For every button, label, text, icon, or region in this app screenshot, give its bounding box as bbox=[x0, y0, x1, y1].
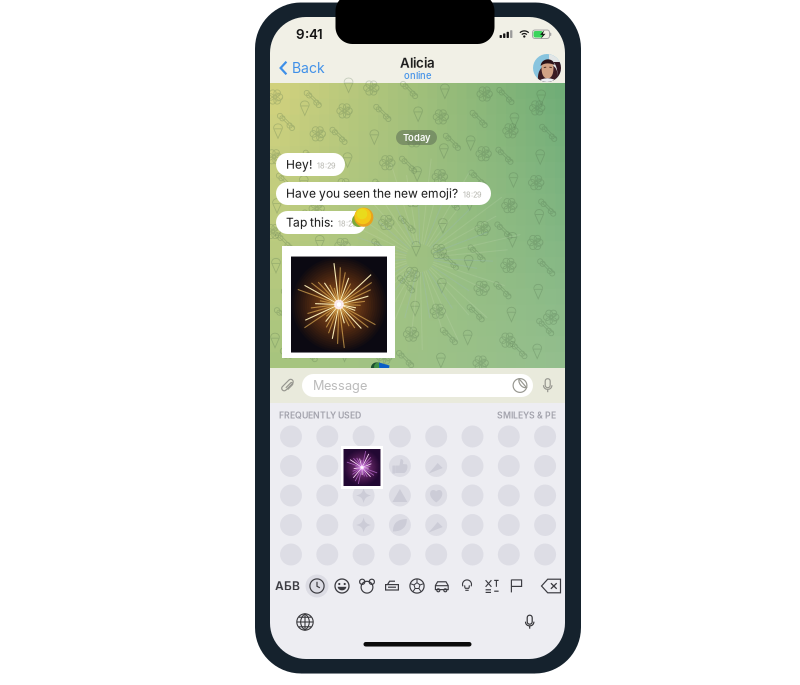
staticText: 18:29 bbox=[463, 190, 482, 199]
button[interactable]: Flags bbox=[504, 573, 529, 599]
button[interactable]: Animals and nature bbox=[354, 573, 379, 599]
staticText: Message bbox=[313, 378, 367, 393]
button[interactable]: Back bbox=[270, 53, 331, 83]
staticText: FREQUENTLY USED bbox=[279, 410, 361, 420]
button[interactable]: АБВ bbox=[270, 573, 304, 599]
button[interactable]: Delete bbox=[537, 573, 564, 599]
staticText: SMILEYS & PE bbox=[497, 410, 556, 420]
staticText: Back bbox=[292, 59, 325, 76]
button[interactable]: Food and drink bbox=[379, 573, 404, 599]
button[interactable]: Switch keyboard bbox=[290, 607, 320, 637]
button[interactable]: Alicia profile photo bbox=[530, 53, 565, 83]
button[interactable]: Symbols bbox=[479, 573, 504, 599]
staticText: 9:41 bbox=[296, 26, 323, 42]
staticText: online bbox=[404, 70, 431, 81]
button[interactable]: Activity bbox=[404, 573, 429, 599]
staticText: 18:29 bbox=[317, 161, 336, 170]
button[interactable]: Travel and places bbox=[429, 573, 454, 599]
button[interactable]: Record voice message bbox=[533, 368, 563, 403]
staticText: Alicia bbox=[400, 55, 435, 71]
staticText: Have you seen the new emoji? bbox=[286, 186, 458, 201]
staticText: Hey! bbox=[286, 157, 312, 172]
staticText: 18:29 bbox=[338, 219, 357, 228]
staticText: Today bbox=[403, 132, 430, 143]
staticText: АБВ bbox=[275, 579, 300, 593]
button[interactable]: Objects bbox=[454, 573, 479, 599]
staticText: Tap this: bbox=[286, 215, 333, 230]
button[interactable]: Recently used bbox=[304, 573, 329, 599]
button[interactable]: Stickers bbox=[507, 374, 533, 397]
button[interactable]: Dictate bbox=[515, 607, 545, 637]
button[interactable]: Smileys and people bbox=[329, 573, 354, 599]
button[interactable]: Attach file bbox=[272, 368, 302, 403]
